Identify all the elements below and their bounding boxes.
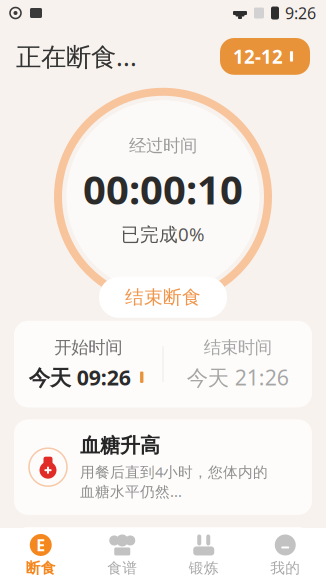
staticText: 经过时间 [129,135,197,156]
button[interactable]: 12-12 [220,38,310,75]
staticText: 12-12 [233,44,283,69]
button[interactable]: E [0,528,81,585]
staticText: 断食 [26,559,56,577]
button[interactable]: 血糖升高 [14,419,312,515]
staticText: 00:00:10 [83,162,243,216]
staticText: 用餐后直到4小时，您体内的血糖水平仍然... [80,462,268,501]
staticText: 结束时间 [204,337,272,358]
staticText: 已完成0% [121,222,205,246]
staticText: E [36,534,45,556]
staticText: 今天 21:26 [187,363,289,391]
button[interactable]: 食谱 [81,528,163,585]
staticText: 我的 [270,559,300,577]
button[interactable]: 编辑开始时间 [136,371,148,383]
staticText: 结束断食 [125,286,201,309]
staticText: 今天 09:26 [29,363,131,391]
staticText: 血糖升高 [80,433,160,458]
staticText: 正在断食... [16,40,137,73]
button[interactable]: 结束断食 [99,277,227,318]
staticText: 开始时间 [54,337,122,358]
button[interactable]: 锻炼 [163,528,244,585]
staticText: 锻炼 [189,559,219,577]
staticText: 9:26 [285,2,316,24]
staticText: 食谱 [107,559,137,577]
button[interactable]: 我的 [244,528,326,585]
